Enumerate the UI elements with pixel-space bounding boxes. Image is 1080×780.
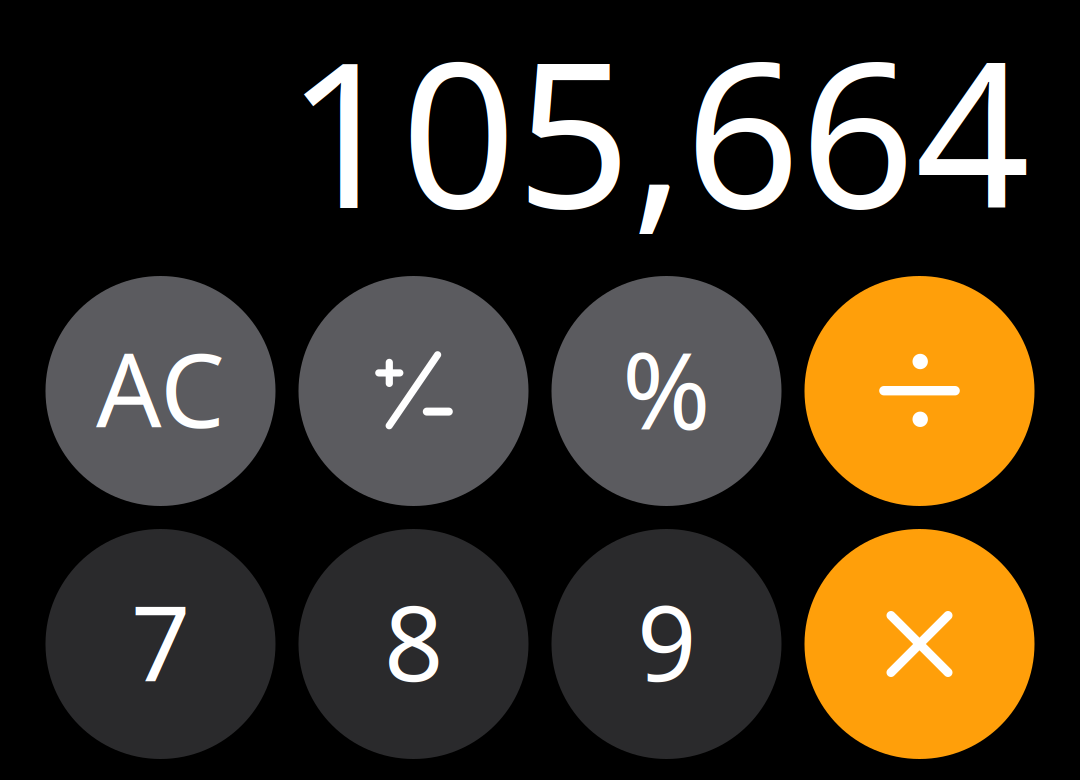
button[interactable]: Multiply (804, 529, 1034, 759)
staticText: 7 (131, 572, 190, 710)
button[interactable]: 8 (298, 529, 528, 759)
button[interactable]: Divide (804, 276, 1034, 506)
button[interactable]: 7 (45, 529, 275, 759)
button[interactable]: 9 (551, 529, 781, 759)
staticText: 105,664 (286, 0, 1030, 264)
button[interactable]: % (551, 276, 781, 506)
button[interactable]: Plus minus (298, 276, 528, 506)
staticText: % (622, 317, 711, 459)
staticText: 8 (384, 572, 443, 710)
staticText: 9 (637, 572, 696, 710)
button[interactable]: AC (45, 276, 275, 506)
staticText: AC (96, 320, 225, 456)
